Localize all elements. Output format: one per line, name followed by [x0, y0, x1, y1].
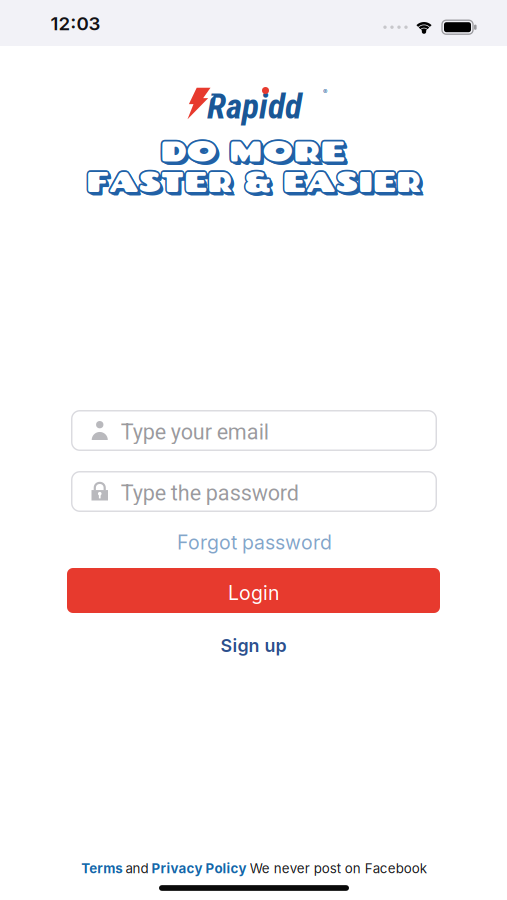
staticText: FASTER & EASIER: [72, 163, 432, 198]
staticText: DO MORE: [163, 134, 348, 169]
staticText: FASTER & EASIER: [77, 164, 437, 200]
staticText: DO MORE: [159, 131, 344, 166]
button[interactable]: Terms: [81, 860, 122, 876]
staticText: DO MORE: [163, 135, 348, 170]
staticText: Terms: [81, 860, 122, 876]
staticText: 12:03: [50, 12, 100, 35]
staticText: FASTER & EASIER: [75, 165, 435, 201]
staticText: DO MORE: [162, 132, 347, 168]
staticText: FASTER & EASIER: [76, 163, 436, 198]
button[interactable]: Type the password: [72, 472, 436, 511]
staticText: FASTER & EASIER: [73, 164, 433, 199]
button[interactable]: Login: [67, 568, 440, 613]
staticText: Login: [228, 581, 279, 605]
staticText: Privacy Policy: [152, 860, 247, 876]
staticText: FASTER & EASIER: [77, 166, 437, 202]
button[interactable]: Sign up: [220, 635, 286, 656]
staticText: Type your email: [121, 419, 269, 445]
staticText: FASTER & EASIER: [74, 164, 434, 200]
staticText: DO MORE: [162, 133, 347, 169]
staticText: FASTER & EASIER: [77, 165, 437, 201]
staticText: DO MORE: [162, 135, 347, 170]
staticText: and: [125, 860, 148, 876]
staticText: DO MORE: [160, 130, 345, 166]
staticText: Sign up: [220, 635, 286, 656]
button[interactable]: Forgot password: [177, 531, 332, 554]
staticText: DO MORE: [162, 131, 347, 166]
staticText: Type the password: [121, 480, 299, 506]
staticText: Forgot password: [177, 531, 332, 554]
staticText: We never post on Facebook: [250, 860, 427, 876]
staticText: FASTER & EASIER: [75, 161, 435, 197]
staticText: FASTER & EASIER: [76, 165, 436, 200]
staticText: FASTER & EASIER: [75, 164, 435, 199]
staticText: DO MORE: [160, 132, 345, 168]
staticText: DO MORE: [159, 132, 344, 168]
staticText: DO MORE: [160, 134, 345, 169]
staticText: Rapidd: [207, 86, 302, 127]
button[interactable]: Type your email: [72, 411, 436, 450]
staticText: DO MORE: [159, 133, 344, 169]
staticText: DO MORE: [164, 136, 349, 171]
staticText: FASTER & EASIER: [74, 163, 434, 198]
staticText: FASTER & EASIER: [74, 161, 434, 196]
button[interactable]: Privacy Policy: [152, 860, 247, 876]
staticText: ®: [323, 87, 327, 96]
staticText: FASTER & EASIER: [73, 161, 433, 197]
staticText: DO MORE: [162, 134, 347, 170]
